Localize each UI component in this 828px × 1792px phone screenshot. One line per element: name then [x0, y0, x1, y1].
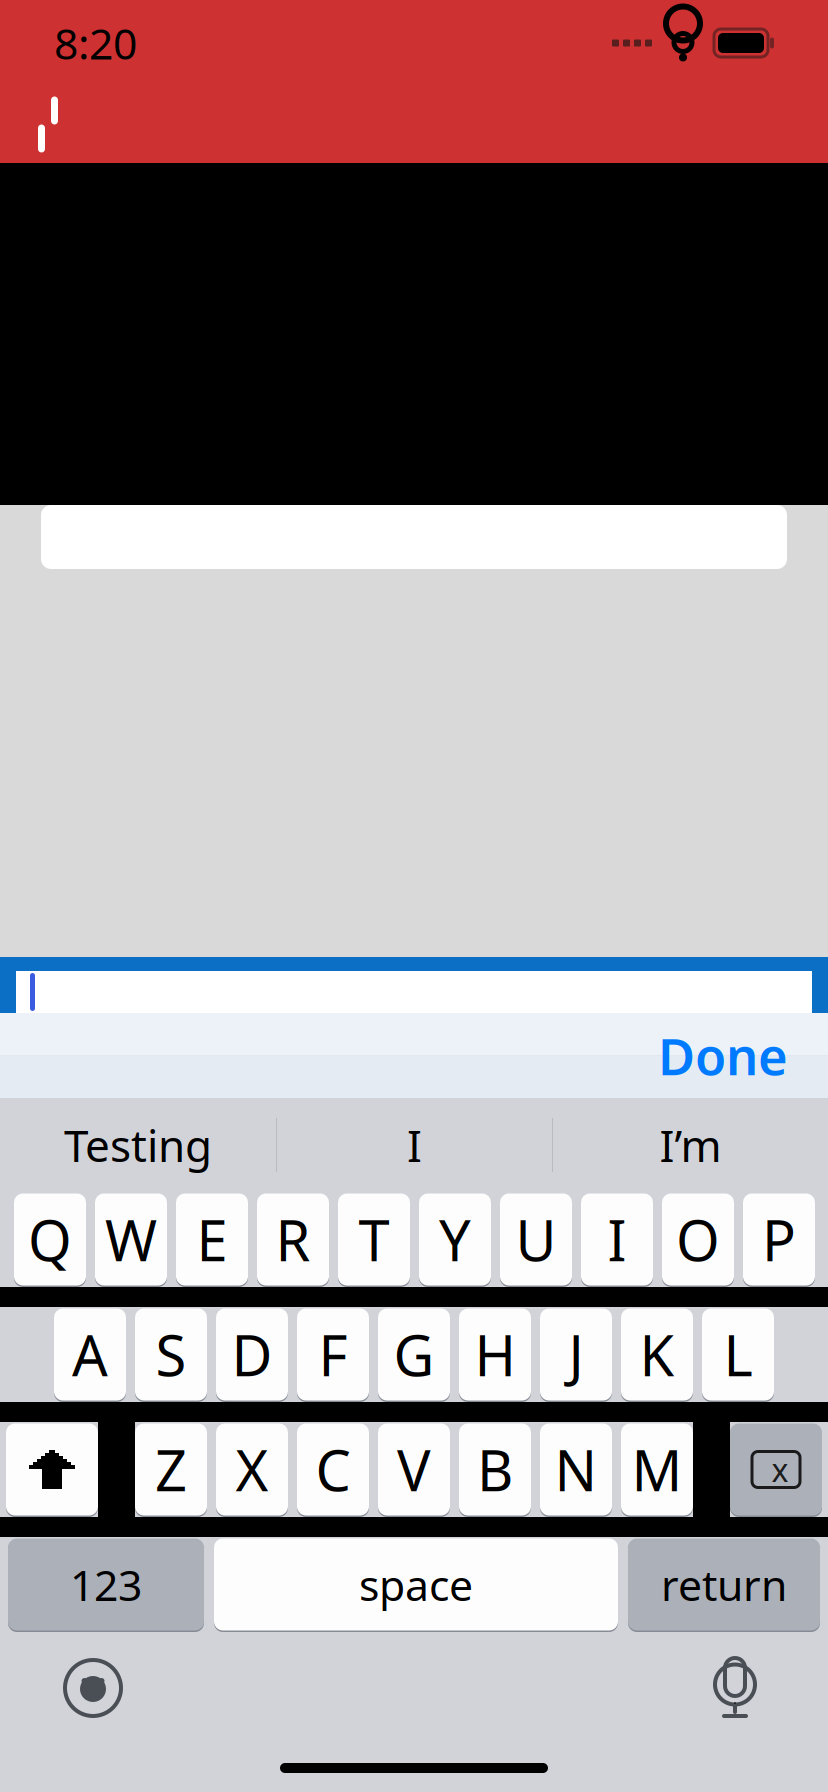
button[interactable]: Dictation: [680, 1633, 790, 1743]
button[interactable]: Done: [636, 1008, 810, 1103]
staticText: X: [235, 1432, 268, 1507]
button[interactable]: Delete: [730, 1422, 822, 1517]
button[interactable]: Back: [8, 91, 88, 157]
button[interactable]: Q: [14, 1192, 86, 1287]
staticText: N: [554, 1432, 597, 1507]
staticText: Testing: [64, 1116, 212, 1174]
staticText: G: [393, 1317, 434, 1392]
button[interactable]: space: [214, 1537, 618, 1632]
button[interactable]: X: [216, 1422, 288, 1517]
button[interactable]: I’m: [553, 1098, 828, 1192]
staticText: M: [631, 1432, 682, 1507]
staticText: x: [771, 1448, 788, 1491]
button[interactable]: E: [176, 1192, 248, 1287]
button[interactable]: [16, 971, 812, 1013]
staticText: Z: [155, 1432, 187, 1507]
staticText: O: [676, 1202, 720, 1277]
staticText: T: [358, 1202, 389, 1277]
button[interactable]: Z: [135, 1422, 207, 1517]
staticText: E: [196, 1202, 227, 1277]
staticText: R: [275, 1202, 310, 1277]
button[interactable]: L: [702, 1307, 774, 1402]
staticText: space: [359, 1556, 473, 1613]
staticText: S: [155, 1317, 186, 1392]
staticText: F: [318, 1317, 347, 1392]
staticText: 123: [70, 1556, 142, 1613]
button[interactable]: D: [216, 1307, 288, 1402]
button[interactable]: 123: [8, 1537, 204, 1632]
button[interactable]: Testing: [0, 1098, 276, 1192]
staticText: return: [661, 1556, 787, 1613]
staticText: B: [477, 1432, 513, 1507]
staticText: I: [407, 1116, 422, 1174]
button[interactable]: M: [621, 1422, 693, 1517]
button[interactable]: C: [297, 1422, 369, 1517]
staticText: K: [639, 1317, 674, 1392]
button[interactable]: A: [54, 1307, 126, 1402]
button[interactable]: J: [540, 1307, 612, 1402]
button[interactable]: T: [338, 1192, 410, 1287]
button[interactable]: S: [135, 1307, 207, 1402]
staticText: A: [72, 1317, 108, 1392]
button[interactable]: N: [540, 1422, 612, 1517]
button[interactable]: U: [500, 1192, 572, 1287]
button[interactable]: B: [459, 1422, 531, 1517]
staticText: W: [105, 1202, 157, 1277]
staticText: 8:20: [54, 15, 137, 71]
staticText: I: [607, 1202, 626, 1277]
staticText: U: [515, 1202, 556, 1277]
button[interactable]: F: [297, 1307, 369, 1402]
button[interactable]: Y: [419, 1192, 491, 1287]
button[interactable]: W: [95, 1192, 167, 1287]
button[interactable]: O: [662, 1192, 734, 1287]
button[interactable]: G: [378, 1307, 450, 1402]
staticText: D: [231, 1317, 272, 1392]
staticText: C: [315, 1432, 350, 1507]
staticText: Done: [658, 1022, 788, 1089]
button[interactable]: P: [743, 1192, 815, 1287]
button[interactable]: H: [459, 1307, 531, 1402]
button[interactable]: R: [257, 1192, 329, 1287]
staticText: H: [474, 1317, 515, 1392]
staticText: P: [762, 1202, 796, 1277]
staticText: V: [397, 1432, 431, 1507]
button[interactable]: I: [277, 1098, 552, 1192]
button[interactable]: K: [621, 1307, 693, 1402]
staticText: L: [723, 1317, 752, 1392]
button[interactable]: Shift: [6, 1422, 98, 1517]
staticText: I’m: [659, 1116, 721, 1174]
button[interactable]: return: [628, 1537, 820, 1632]
staticText: J: [568, 1317, 583, 1392]
button[interactable]: Emoji: [38, 1633, 148, 1743]
button[interactable]: V: [378, 1422, 450, 1517]
staticText: Q: [28, 1202, 72, 1277]
button[interactable]: I: [581, 1192, 653, 1287]
staticText: Y: [439, 1202, 471, 1277]
